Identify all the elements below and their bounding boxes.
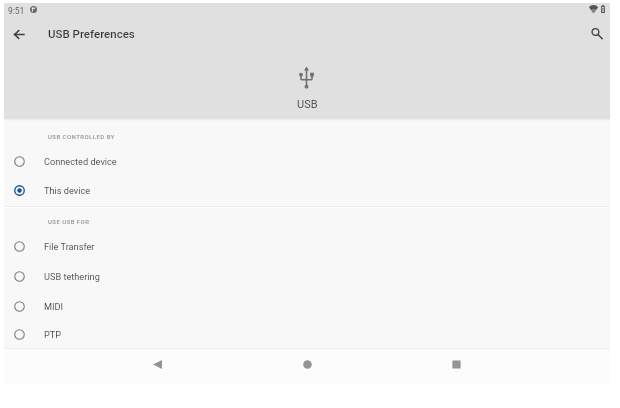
staticText: This device bbox=[44, 185, 91, 196]
staticText: 9:51 bbox=[8, 6, 25, 16]
button[interactable]: Recent apps bbox=[440, 348, 472, 380]
staticText: USB Preferences bbox=[48, 27, 135, 40]
staticText: USE USB FOR bbox=[48, 218, 90, 225]
staticText: File Transfer bbox=[44, 241, 95, 252]
button[interactable]: Navigate up bbox=[8, 23, 30, 45]
staticText: PTP bbox=[44, 329, 62, 340]
button[interactable]: File Transfer bbox=[4, 231, 610, 261]
button[interactable]: Search bbox=[586, 23, 608, 45]
button[interactable]: This device bbox=[4, 175, 610, 205]
button[interactable]: USB tethering bbox=[4, 261, 610, 291]
staticText: USB bbox=[297, 98, 318, 111]
button[interactable]: MIDI bbox=[4, 291, 610, 321]
staticText: USB CONTROLLED BY bbox=[48, 133, 115, 140]
button[interactable]: Back bbox=[141, 348, 173, 380]
staticText: USB tethering bbox=[44, 271, 100, 282]
staticText: MIDI bbox=[44, 301, 64, 312]
staticText: Connected device bbox=[44, 156, 117, 167]
button[interactable]: Home bbox=[291, 348, 323, 380]
button[interactable]: Connected device bbox=[4, 146, 610, 176]
button[interactable]: PTP bbox=[4, 319, 610, 349]
